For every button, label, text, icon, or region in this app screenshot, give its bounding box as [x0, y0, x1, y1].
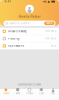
button[interactable]: Orders [24, 89, 35, 100]
staticText: Search [46, 22, 52, 25]
staticText: Me [52, 92, 55, 95]
staticText: from $45 [45, 37, 54, 40]
button[interactable]: House Cleaning [0, 28, 59, 35]
staticText: Home [3, 92, 9, 95]
button[interactable]: Search [44, 21, 55, 25]
staticText: from $29 [45, 30, 54, 33]
staticText: $35 [51, 44, 54, 47]
staticText: House Cleaning [8, 30, 27, 33]
staticText: Search for a service [9, 22, 30, 25]
staticText: Plumbing [8, 37, 20, 40]
staticText: Book [16, 92, 20, 95]
button[interactable]: Home [0, 89, 12, 100]
staticText: Nothing more to show [18, 83, 41, 86]
staticText: Orders [26, 92, 33, 95]
button[interactable]: Book [12, 89, 24, 100]
button[interactable]: Me [47, 89, 59, 100]
staticText: Amelia Parker [18, 15, 40, 18]
staticText: Appliance Fix [8, 44, 24, 47]
button[interactable]: Plumbing [0, 35, 59, 42]
button[interactable]: Appliance Fix [0, 42, 59, 49]
staticText: Chat [39, 92, 44, 95]
button[interactable]: Chat [35, 89, 47, 100]
staticText: 9:41 [4, 0, 10, 3]
